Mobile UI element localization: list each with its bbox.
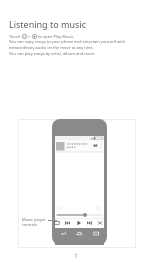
- staticText: You can play songs by artist, album and …: [9, 51, 96, 57]
- staticText: Music player: [22, 217, 46, 222]
- staticText: controls: [22, 222, 38, 227]
- staticText: to open Play Music.: [37, 34, 75, 39]
- staticText: Touch: [9, 34, 22, 39]
- staticText: You can copy songs to your phone and ent…: [9, 39, 126, 45]
- staticText: Listening to music: [9, 18, 86, 30]
- staticText: extraordinary audio on the move at any t…: [9, 45, 94, 51]
- staticText: >: [27, 34, 32, 39]
- staticText: 7: [0, 253, 152, 260]
